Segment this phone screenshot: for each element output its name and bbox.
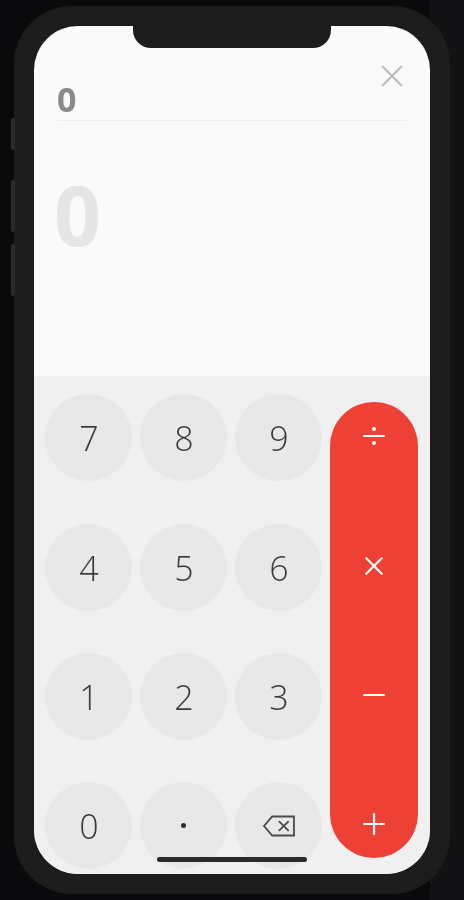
staticText: 0 [79, 803, 99, 849]
button[interactable] [140, 782, 227, 869]
staticText: 8 [174, 415, 194, 461]
button[interactable]: 4 [45, 524, 132, 611]
button[interactable]: 0 [45, 782, 132, 869]
button[interactable]: 1 [45, 653, 132, 740]
button[interactable]: Divide [330, 402, 418, 470]
staticText: 6 [269, 545, 289, 591]
staticText: 3 [269, 674, 289, 720]
staticText: 5 [174, 545, 194, 591]
staticText: 4 [79, 545, 99, 591]
staticText: 1 [79, 674, 99, 720]
staticText: 0 [54, 158, 101, 270]
button[interactable]: Backspace [235, 782, 322, 869]
staticText: 7 [79, 415, 99, 461]
staticText: 2 [174, 674, 194, 720]
button[interactable]: Subtract [330, 661, 418, 729]
button[interactable]: 2 [140, 653, 227, 740]
button[interactable]: Add [330, 790, 418, 858]
button[interactable]: 7 [45, 394, 132, 481]
button[interactable]: 9 [235, 394, 322, 481]
button[interactable]: 3 [235, 653, 322, 740]
button[interactable]: 5 [140, 524, 227, 611]
button[interactable]: 8 [140, 394, 227, 481]
button[interactable]: 6 [235, 524, 322, 611]
staticText: 9 [269, 415, 289, 461]
staticText: 0 [57, 76, 77, 122]
button[interactable]: Close [368, 52, 416, 100]
button[interactable]: Multiply [330, 532, 418, 600]
